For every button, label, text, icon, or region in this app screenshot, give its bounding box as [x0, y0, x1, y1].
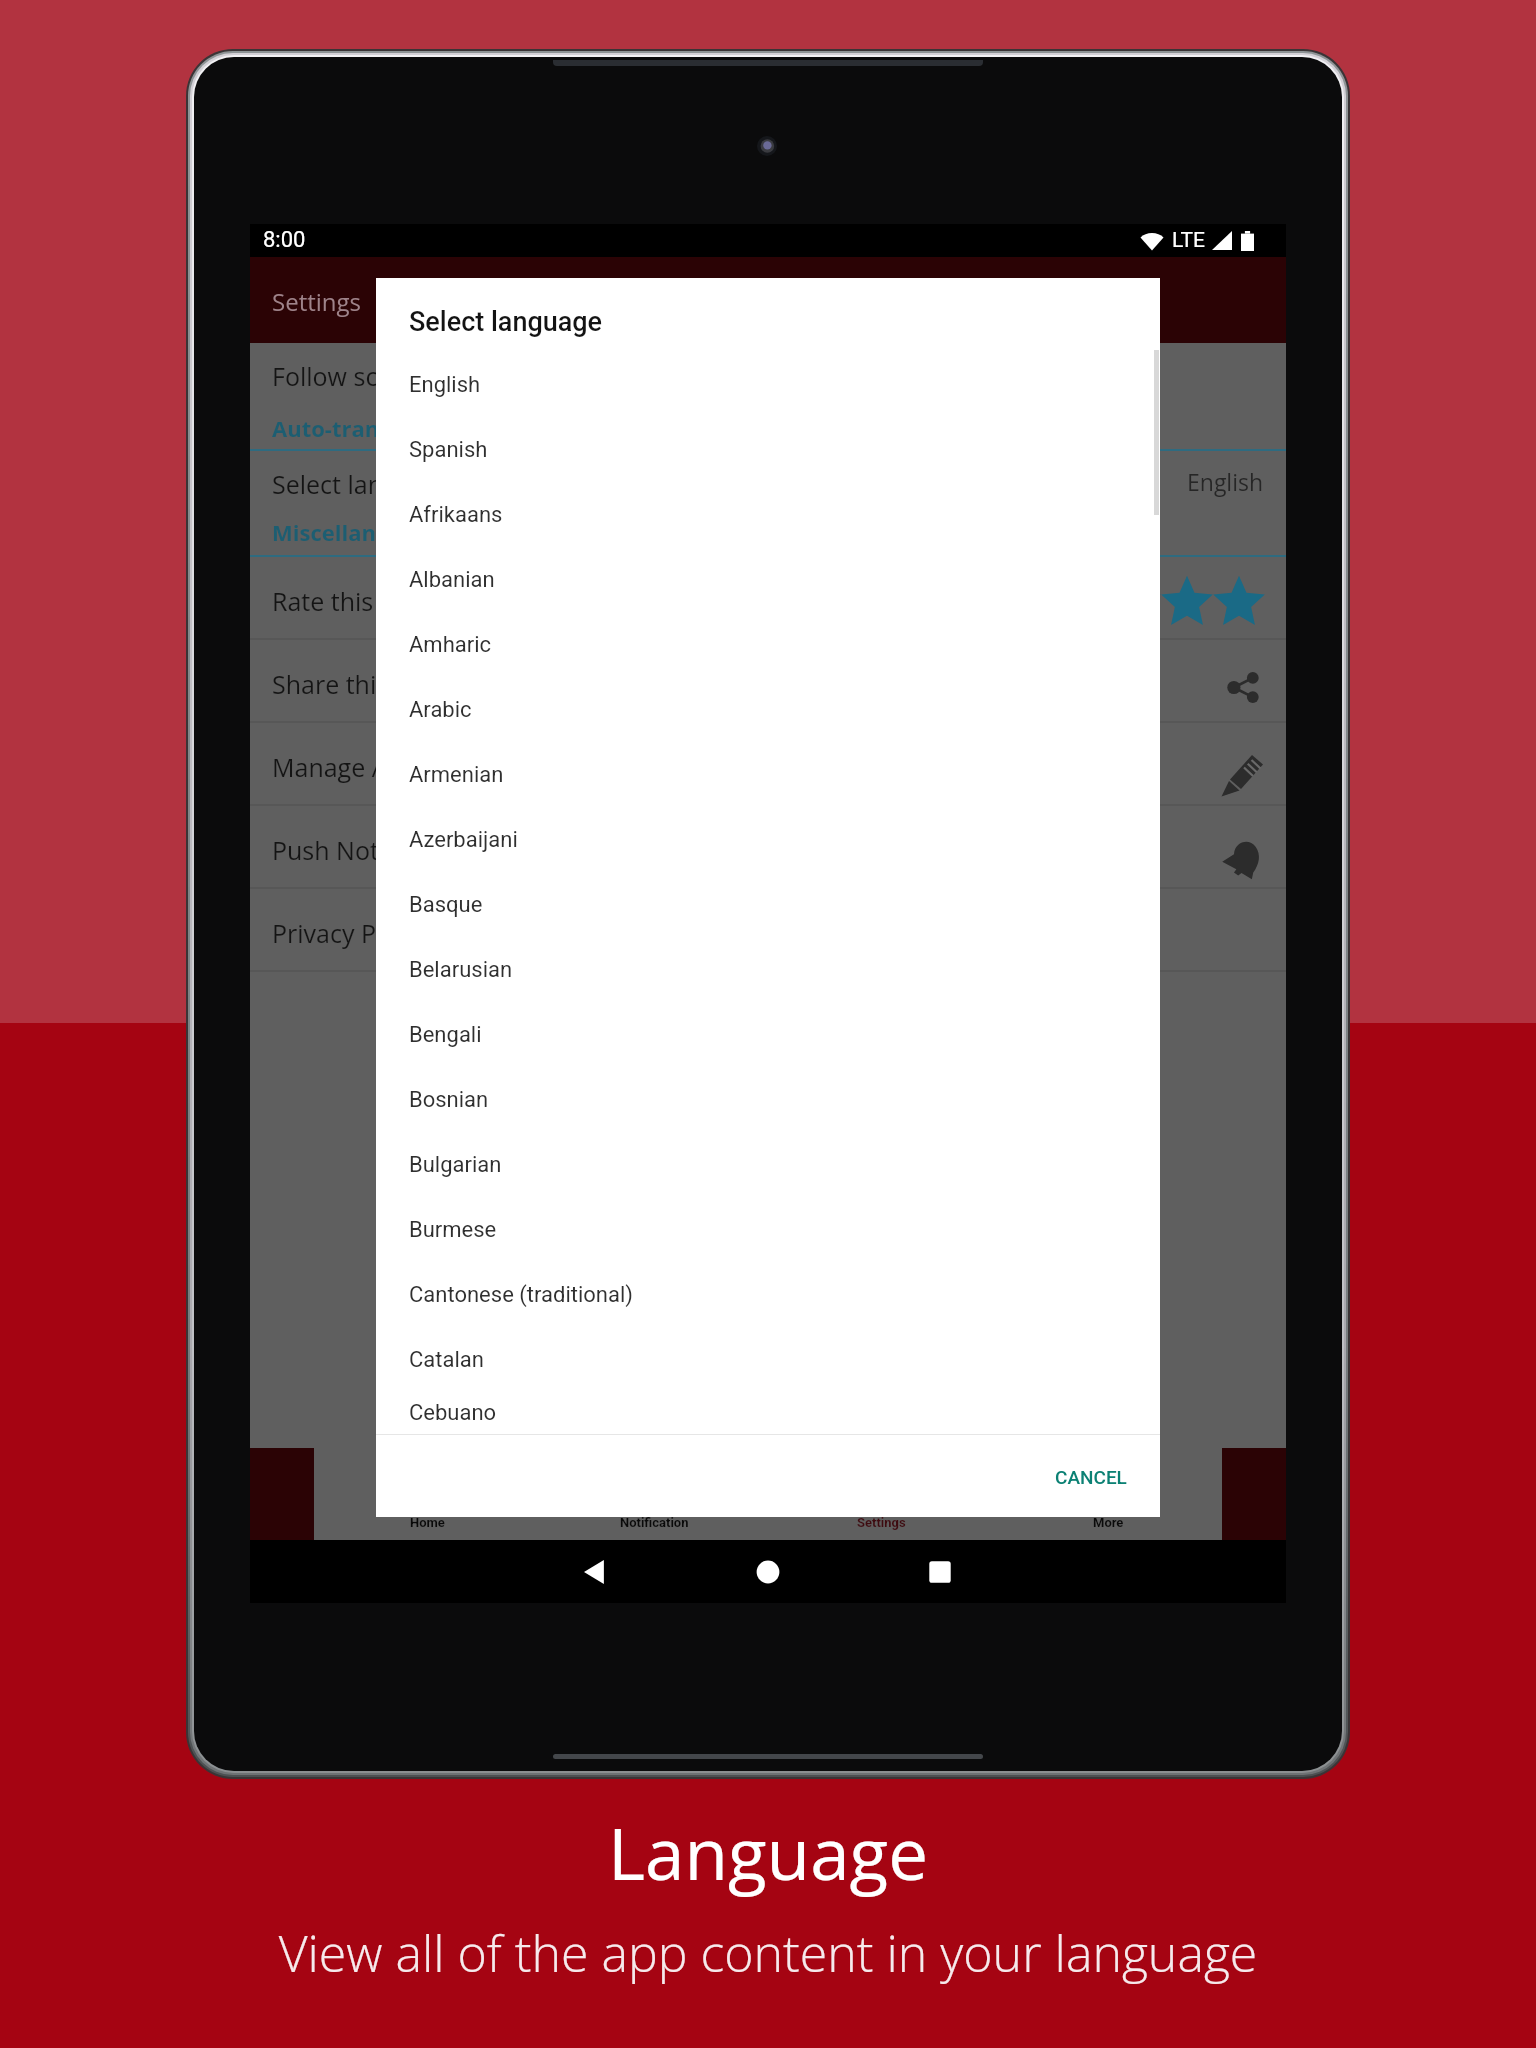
staticText: Notification	[620, 1515, 689, 1530]
staticText: Spanish	[409, 437, 488, 463]
staticText: Amharic	[409, 632, 492, 658]
staticText: Select language	[409, 306, 603, 338]
staticText: Catalan	[409, 1347, 484, 1373]
button[interactable]: Belarusian	[376, 937, 1160, 1002]
button[interactable]: Home	[314, 1448, 541, 1540]
button[interactable]: Cebuano	[376, 1392, 1160, 1434]
staticText: Select language	[272, 467, 454, 501]
staticText: English	[409, 372, 481, 398]
staticText: English	[1187, 466, 1264, 497]
button[interactable]: Settings	[768, 1448, 995, 1540]
button[interactable]: CANCEL	[1041, 1456, 1141, 1498]
button[interactable]: Back	[577, 1555, 611, 1589]
staticText: Auto-translate	[272, 413, 433, 443]
staticText: Burmese	[409, 1217, 497, 1243]
button[interactable]: Amharic	[376, 612, 1160, 677]
button[interactable]: Share this app	[250, 640, 1286, 723]
button[interactable]: Spanish	[376, 417, 1160, 482]
button[interactable]: Azerbaijani	[376, 807, 1160, 872]
staticText: Manage Account	[272, 750, 467, 784]
button[interactable]: Recent apps	[923, 1555, 957, 1589]
button[interactable]: Bosnian	[376, 1067, 1160, 1132]
staticText: Basque	[409, 892, 483, 918]
button[interactable]: Catalan	[376, 1327, 1160, 1392]
staticText: Cantonese (traditional)	[409, 1282, 633, 1308]
staticText: Miscellaneous	[272, 517, 428, 547]
button[interactable]: Home	[751, 1555, 785, 1589]
button[interactable]: Notification	[541, 1448, 768, 1540]
button[interactable]: English	[376, 352, 1160, 417]
staticText: Follow schedule	[272, 359, 458, 393]
staticText: Home	[410, 1515, 445, 1530]
button[interactable]: Manage Account	[250, 723, 1286, 806]
staticText: Share this app	[272, 667, 440, 701]
button[interactable]: Armenian	[376, 742, 1160, 807]
staticText: Bengali	[409, 1022, 482, 1048]
staticText: Bulgarian	[409, 1152, 502, 1178]
button[interactable]: Bengali	[376, 1002, 1160, 1067]
button[interactable]: Basque	[376, 872, 1160, 937]
staticText: Armenian	[409, 762, 504, 788]
staticText: Belarusian	[409, 957, 513, 983]
staticText: Bosnian	[409, 1087, 489, 1113]
button[interactable]: Rate this app	[250, 557, 1286, 640]
staticText: Push Notification	[272, 833, 472, 867]
button[interactable]: Select language	[250, 451, 1286, 512]
staticText: CANCEL	[1055, 1466, 1127, 1488]
button[interactable]: Arabic	[376, 677, 1160, 742]
staticText: Rate this app	[272, 584, 425, 618]
button[interactable]: Push Notification	[250, 806, 1286, 889]
staticText: Azerbaijani	[409, 827, 518, 853]
staticText: LTE	[1172, 228, 1205, 253]
button[interactable]: Burmese	[376, 1197, 1160, 1262]
button[interactable]: Follow schedule	[250, 343, 1286, 411]
button[interactable]: Albanian	[376, 547, 1160, 612]
button[interactable]: Afrikaans	[376, 482, 1160, 547]
button[interactable]: More	[995, 1448, 1222, 1540]
button[interactable]: Cantonese (traditional)	[376, 1262, 1160, 1327]
staticText: Albanian	[409, 567, 495, 593]
staticText: Arabic	[409, 697, 472, 723]
staticText: Settings	[272, 285, 361, 318]
staticText: Cebuano	[409, 1400, 497, 1426]
staticText: More	[1093, 1515, 1124, 1530]
staticText: Settings	[857, 1515, 906, 1530]
button[interactable]: Privacy Policy	[250, 889, 1286, 972]
staticText: View all of the app content in your lang…	[0, 1919, 1536, 1987]
staticText: 8:00	[263, 227, 306, 253]
staticText: Language	[0, 1804, 1536, 1901]
staticText: Afrikaans	[409, 502, 503, 528]
button[interactable]: Bulgarian	[376, 1132, 1160, 1197]
staticText: Privacy Policy	[272, 916, 429, 950]
